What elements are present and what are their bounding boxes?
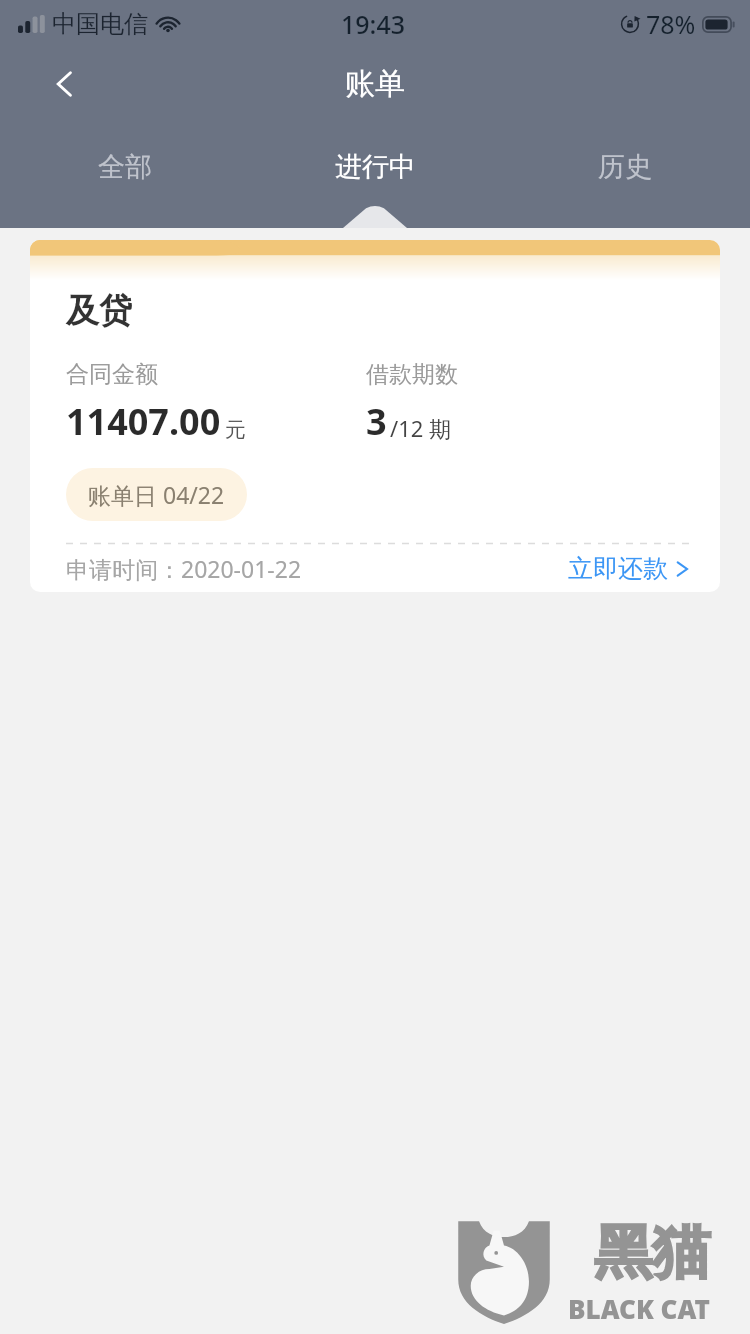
- button[interactable]: 立即还款: [548, 545, 690, 592]
- staticText: 78%: [646, 7, 696, 41]
- staticText: 账单: [345, 65, 405, 103]
- button[interactable]: Back: [26, 48, 104, 120]
- staticText: 11407.00: [66, 397, 221, 446]
- button[interactable]: 全部: [0, 130, 250, 204]
- button[interactable]: 进行中: [250, 130, 500, 204]
- staticText: /12 期: [390, 413, 452, 443]
- button[interactable]: 历史: [500, 130, 750, 204]
- staticText: 全部: [98, 150, 152, 184]
- staticText: 历史: [598, 150, 652, 184]
- button[interactable]: 及贷: [30, 240, 720, 592]
- staticText: 借款期数: [366, 360, 458, 389]
- staticText: 3: [366, 397, 387, 446]
- staticText: 中国电信: [52, 9, 148, 39]
- staticText: 立即还款: [568, 553, 668, 584]
- staticText: 合同金额: [66, 360, 158, 389]
- staticText: 进行中: [335, 150, 416, 184]
- staticText: 黑猫: [594, 1216, 710, 1289]
- staticText: 申请时间：2020-01-22: [66, 553, 302, 584]
- staticText: BLACK CAT: [568, 1291, 710, 1326]
- staticText: 及贷: [66, 290, 132, 332]
- staticText: 19:43: [341, 7, 406, 41]
- staticText: 元: [225, 417, 246, 443]
- staticText: 账单日 04/22: [88, 479, 225, 510]
